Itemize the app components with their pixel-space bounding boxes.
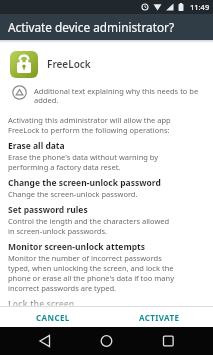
staticText: Change the screen-unlock password	[8, 177, 161, 189]
staticText: Activating this administrator will allow…	[8, 115, 171, 135]
button[interactable]	[71, 327, 142, 355]
staticText: Erase the phone's data without warning b…	[8, 152, 159, 172]
staticText: Monitor the number of incorrect password…	[8, 253, 175, 293]
button[interactable]	[142, 327, 213, 355]
staticText: Change the screen-unlock password.	[8, 189, 138, 199]
staticText: Set password rules	[8, 204, 88, 216]
staticText: Additional text explaining why this need…	[34, 86, 199, 106]
staticText: Monitor screen-unlock attempts	[8, 241, 146, 253]
button[interactable]: ACTIVATE	[106, 307, 213, 327]
button[interactable]	[0, 327, 71, 355]
staticText: Control the length and the characters al…	[8, 216, 170, 236]
button[interactable]: CANCEL	[0, 307, 106, 327]
staticText: ACTIVATE	[139, 312, 180, 323]
staticText: Activate device administrator?	[8, 19, 175, 35]
staticText: CANCEL	[36, 312, 70, 323]
staticText: Lock the screen	[8, 298, 75, 306]
staticText: FreeLock	[47, 57, 91, 71]
staticText: Erase all data	[8, 140, 65, 152]
staticText: 11:49	[190, 2, 210, 12]
